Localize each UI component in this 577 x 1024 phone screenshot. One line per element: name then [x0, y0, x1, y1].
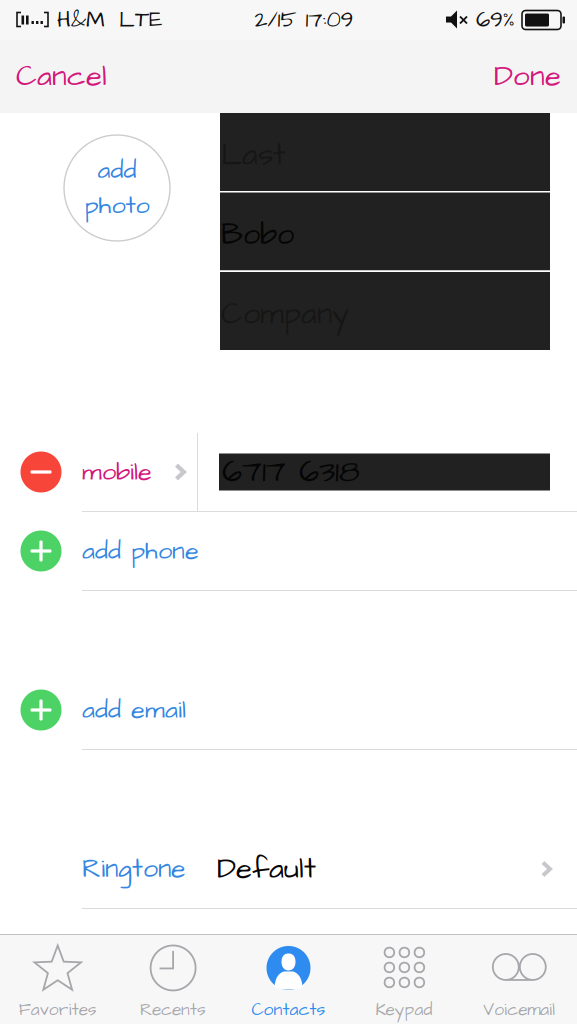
staticText: add email	[82, 692, 186, 728]
staticText: Recents	[140, 998, 206, 1022]
staticText: Contacts	[251, 998, 325, 1022]
staticText: Favorites	[19, 998, 97, 1022]
staticText: Company	[221, 293, 349, 336]
staticText: Voicemail	[483, 998, 555, 1022]
staticText: Keypad	[375, 998, 432, 1022]
button[interactable]: Favorites	[0, 935, 115, 1024]
button[interactable]: mobile	[82, 433, 197, 511]
staticText: Ringtone	[82, 850, 185, 888]
button[interactable]: add phone	[0, 512, 577, 590]
button[interactable]: Cancel	[0, 40, 123, 113]
staticText: add phone	[82, 533, 199, 569]
button[interactable]: Done	[478, 40, 577, 113]
button[interactable]: Add photo	[64, 135, 170, 241]
staticText: Cancel	[16, 56, 107, 97]
button[interactable]: Contacts	[231, 935, 346, 1024]
button[interactable]: Keypad	[346, 935, 462, 1024]
staticText: H&M	[57, 4, 105, 36]
staticText: 6717 6318	[222, 450, 360, 494]
staticText: Bobo	[221, 213, 294, 256]
staticText: mobile	[82, 454, 152, 490]
staticText: Default	[217, 849, 316, 889]
button[interactable]: Ringtone	[0, 830, 577, 908]
staticText: LTE	[119, 4, 162, 36]
staticText: photo	[84, 188, 149, 223]
staticText: 2/15 17:09	[254, 4, 353, 36]
button[interactable]: Delete mobile phone	[0, 433, 82, 511]
button[interactable]: add email	[0, 671, 577, 749]
staticText: Done	[494, 56, 561, 97]
button[interactable]: Recents	[115, 935, 231, 1024]
staticText: add	[97, 153, 136, 188]
staticText: 69%	[476, 4, 515, 36]
button[interactable]: Voicemail	[462, 935, 577, 1024]
staticText: Last	[221, 134, 285, 177]
